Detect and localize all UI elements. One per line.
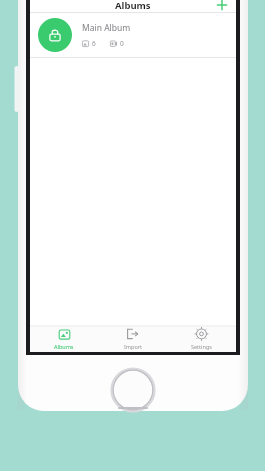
staticText: Albums xyxy=(115,0,151,11)
staticText: 6 xyxy=(92,39,96,48)
staticText: Albums xyxy=(54,343,74,350)
staticText: Main Album xyxy=(82,22,131,34)
button[interactable]: Settings xyxy=(167,326,236,352)
button[interactable]: Import xyxy=(98,326,167,352)
staticText: 0 xyxy=(120,39,124,48)
button[interactable]: Add album xyxy=(214,0,230,12)
button[interactable]: Albums xyxy=(30,326,98,352)
staticText: Import xyxy=(124,343,142,350)
button[interactable]: Main Album xyxy=(30,13,236,57)
staticText: Settings xyxy=(191,343,212,350)
